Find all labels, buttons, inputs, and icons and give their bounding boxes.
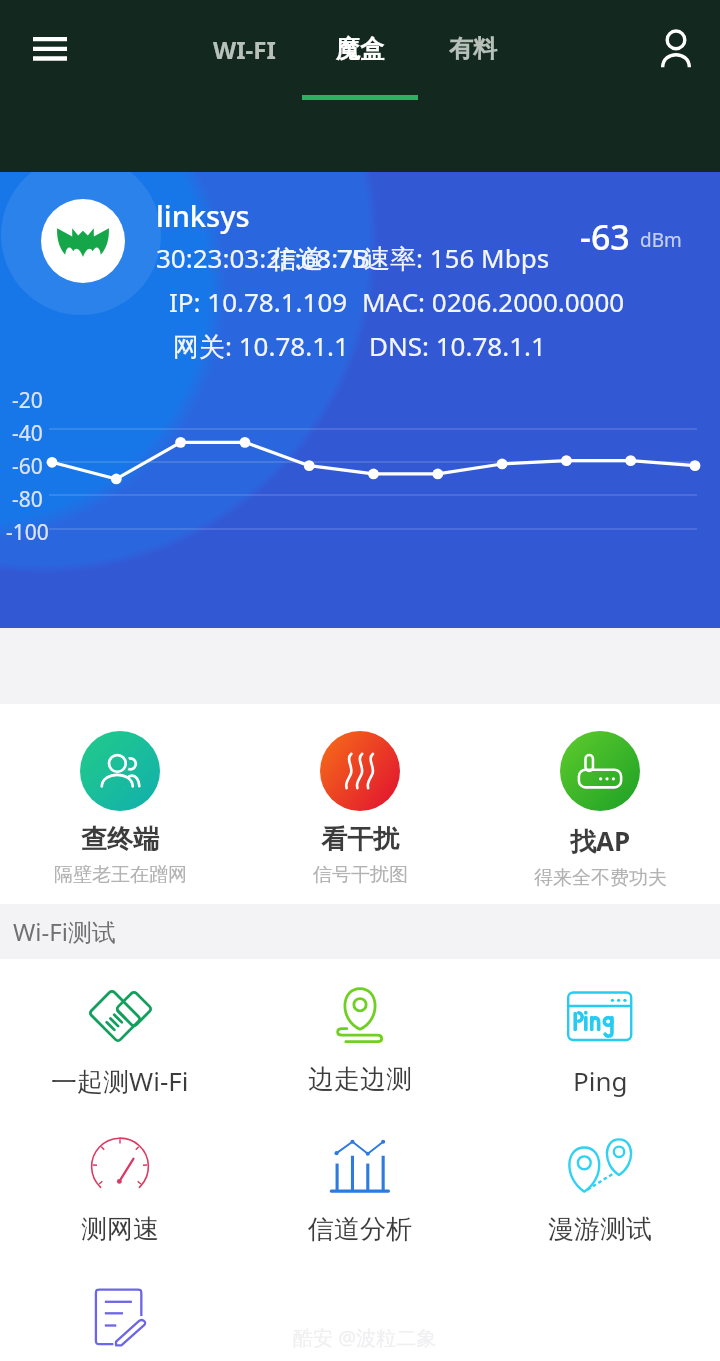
staticText: 一起测Wi-Fi — [51, 1063, 189, 1099]
staticText: -80 — [12, 485, 43, 514]
button[interactable]: 魔盒 — [302, 0, 418, 98]
staticText: 信道分析 — [308, 1213, 412, 1246]
staticText: 看干扰 — [321, 823, 399, 856]
staticText: -60 — [12, 452, 43, 481]
staticText: 网关: 10.78.1.1 — [173, 328, 349, 364]
button[interactable]: Menu — [2, 0, 98, 98]
staticText: IP: 10.78.1.109 — [169, 284, 348, 319]
staticText: WI-FI — [213, 33, 276, 66]
staticText: DNS: 10.78.1.1 — [369, 328, 546, 363]
staticText: 信道: 75 — [271, 240, 367, 276]
staticText: 找AP — [570, 823, 631, 859]
staticText: MAC: 0206.2000.0000 — [362, 284, 625, 319]
staticText: 测网速 — [81, 1213, 159, 1246]
staticText: -63 — [580, 214, 630, 260]
staticText: dBm — [640, 227, 682, 253]
staticText: 漫游测试 — [548, 1213, 652, 1246]
button[interactable]: 有料 — [415, 0, 531, 98]
staticText: 魔盒 — [336, 34, 384, 64]
staticText: 隔壁老王在蹭网 — [54, 863, 187, 887]
button[interactable]: WI-FI — [186, 0, 302, 98]
staticText: 速率: 156 Mbps — [364, 240, 550, 276]
button[interactable]: 漫游测试 — [480, 1109, 720, 1259]
staticText: 酷安 @波粒二象 — [293, 1324, 437, 1351]
button[interactable] — [0, 1259, 240, 1361]
button[interactable]: Account — [632, 0, 720, 98]
staticText: 得来全不费功夫 — [534, 866, 667, 890]
staticText: Wi-Fi测试 — [13, 915, 116, 948]
staticText: 有料 — [449, 34, 497, 64]
staticText: 查终端 — [81, 823, 159, 856]
staticText: Ping — [573, 1063, 628, 1098]
button[interactable]: 找AP — [480, 704, 720, 904]
button[interactable]: 看干扰 — [240, 704, 480, 904]
staticText: -40 — [12, 419, 43, 448]
staticText: 边走边测 — [308, 1063, 412, 1096]
button[interactable]: 查终端 — [0, 704, 240, 904]
staticText: -100 — [6, 518, 49, 547]
button[interactable]: 信道分析 — [240, 1109, 480, 1259]
staticText: 30:23:03:2F:68:7B — [156, 240, 370, 275]
button[interactable]: 边走边测 — [240, 959, 480, 1109]
button[interactable]: 一起测Wi-Fi — [0, 959, 240, 1109]
staticText: 信号干扰图 — [313, 863, 408, 887]
staticText: -20 — [12, 386, 43, 415]
button[interactable]: Ping — [480, 959, 720, 1109]
staticText: linksys — [156, 196, 250, 235]
button[interactable]: 测网速 — [0, 1109, 240, 1259]
